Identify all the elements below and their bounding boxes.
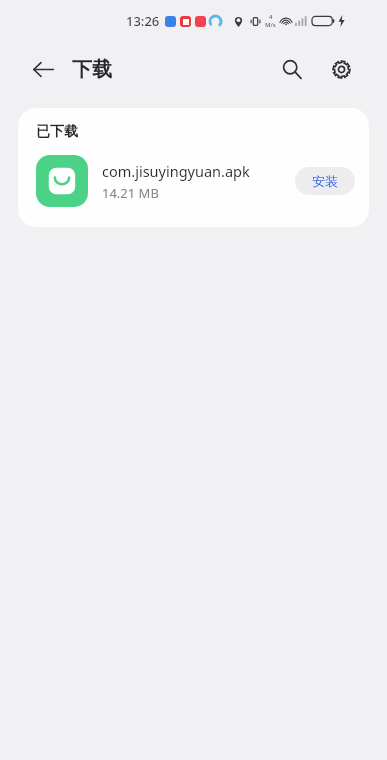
staticText: 14.21 MB — [102, 184, 159, 202]
staticText: 安装 — [312, 173, 338, 189]
staticText: 13:26 — [126, 12, 160, 30]
staticText: com.jisuyingyuan.apk — [102, 161, 250, 181]
staticText: 已下载 — [36, 123, 78, 141]
button[interactable]: Search — [274, 51, 310, 87]
staticText: 4 — [269, 13, 273, 21]
button[interactable]: 安装 — [295, 167, 355, 195]
staticText: 下载 — [72, 57, 112, 82]
staticText: M/s — [265, 21, 276, 29]
button[interactable]: Settings — [323, 51, 359, 87]
button[interactable]: Back — [26, 52, 60, 86]
button[interactable]: com.jisuyingyuan.apk — [18, 155, 369, 207]
